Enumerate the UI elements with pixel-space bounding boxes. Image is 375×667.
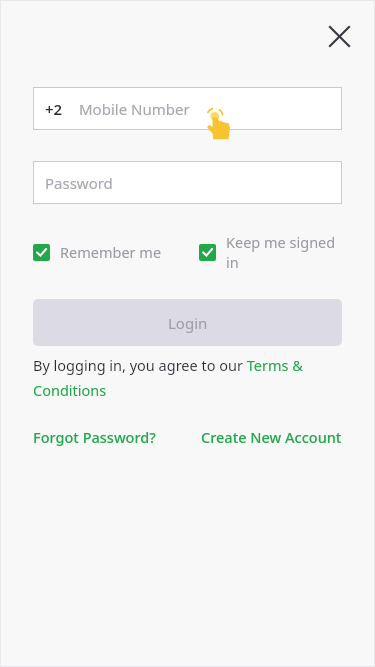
staticText: By logging in, you agree to our Terms & … bbox=[33, 355, 342, 400]
button[interactable]: Forgot Password? bbox=[33, 424, 156, 450]
button[interactable]: Remember me bbox=[33, 240, 162, 264]
button[interactable]: Password bbox=[33, 161, 342, 204]
staticText: Login bbox=[168, 313, 208, 333]
staticText: +2 bbox=[45, 99, 63, 119]
button[interactable]: +2 bbox=[33, 87, 342, 130]
button[interactable]: Login bbox=[33, 299, 342, 346]
button[interactable]: Keep me signed in bbox=[199, 230, 342, 274]
staticText: Remember me bbox=[60, 242, 162, 262]
button[interactable]: Close bbox=[317, 14, 361, 58]
staticText: Create New Account bbox=[201, 427, 342, 447]
staticText: Password bbox=[45, 173, 113, 193]
staticText: Forgot Password? bbox=[33, 427, 156, 447]
staticText: Keep me signed in bbox=[226, 232, 342, 272]
staticText: Mobile Number bbox=[79, 99, 190, 119]
button[interactable]: Create New Account bbox=[201, 424, 342, 450]
